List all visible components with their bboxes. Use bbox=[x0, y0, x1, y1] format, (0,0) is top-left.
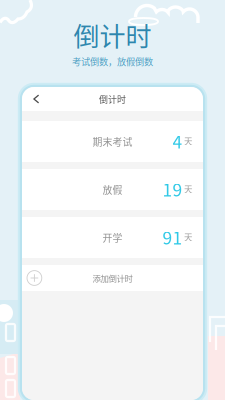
staticText: 天 bbox=[184, 183, 193, 195]
staticText: 4 bbox=[172, 128, 182, 154]
button[interactable]: Back bbox=[22, 87, 51, 111]
staticText: 天 bbox=[184, 231, 193, 243]
staticText: 91 bbox=[162, 224, 182, 250]
staticText: 倒计时 bbox=[73, 16, 151, 54]
staticText: 添加倒计时 bbox=[92, 272, 132, 284]
staticText: 期末考试 bbox=[92, 134, 132, 149]
staticText: 19 bbox=[162, 176, 182, 202]
button[interactable]: 期末考试 bbox=[22, 121, 203, 162]
staticText: 开学 bbox=[102, 230, 122, 245]
staticText: 天 bbox=[184, 135, 193, 147]
button[interactable]: 放假 bbox=[22, 169, 203, 210]
button[interactable]: 添加倒计时 bbox=[22, 265, 203, 291]
staticText: 考试倒数，放假倒数 bbox=[72, 55, 153, 68]
staticText: 放假 bbox=[102, 182, 122, 197]
staticText: 倒计时 bbox=[99, 92, 126, 105]
button[interactable]: 开学 bbox=[22, 217, 203, 258]
